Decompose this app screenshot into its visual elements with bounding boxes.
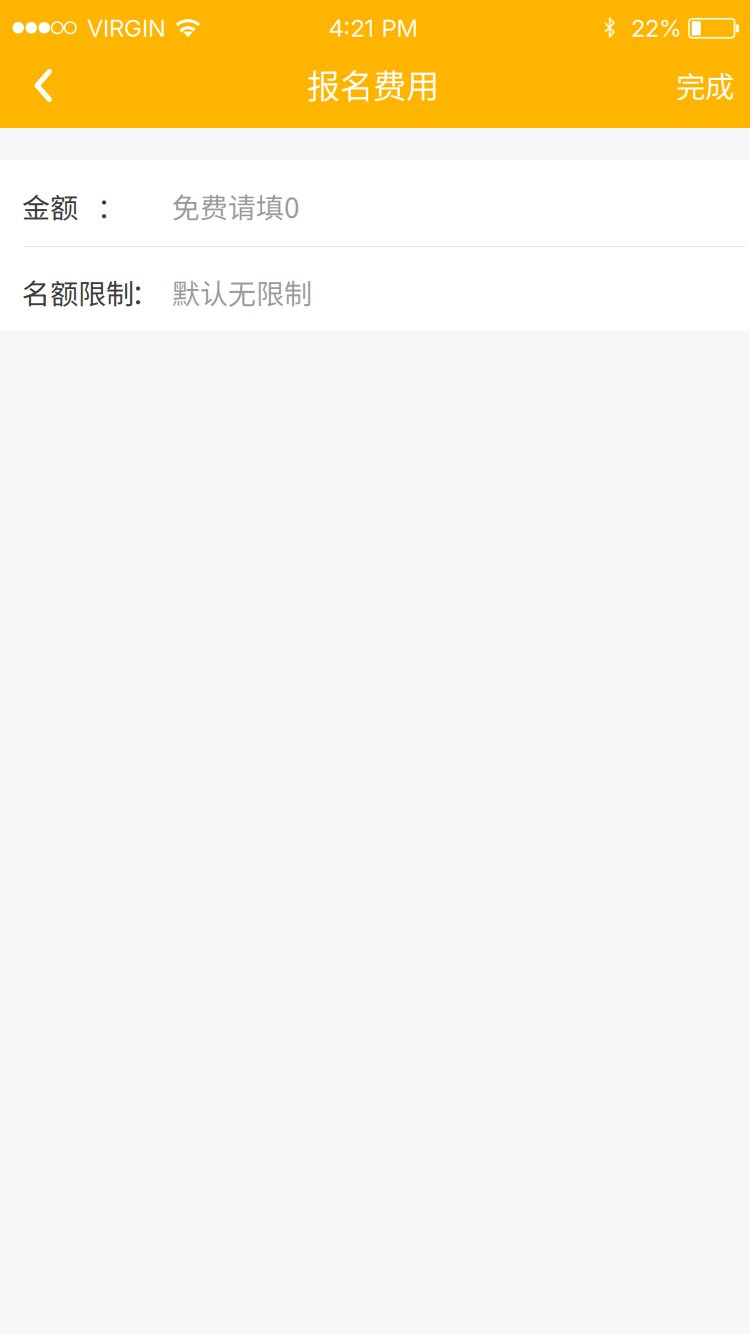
staticText: 4:21 PM xyxy=(328,13,417,42)
staticText: VIRGIN xyxy=(87,13,166,42)
staticText: 完成 xyxy=(676,64,734,106)
staticText: 名额限制 xyxy=(22,272,134,312)
staticText: 报名费用 xyxy=(307,60,439,108)
button[interactable]: Back xyxy=(0,49,86,121)
button[interactable]: 完成 xyxy=(624,49,750,121)
button[interactable]: 金额 xyxy=(0,160,750,246)
staticText: 22% xyxy=(631,13,682,42)
staticText: 免费请填0 xyxy=(172,186,300,226)
staticText: ： xyxy=(97,186,125,226)
staticText: 默认无限制 xyxy=(172,272,312,312)
staticText: ： xyxy=(131,272,159,312)
staticText: 金额 xyxy=(22,186,78,226)
button[interactable]: 名额限制 xyxy=(0,247,750,331)
